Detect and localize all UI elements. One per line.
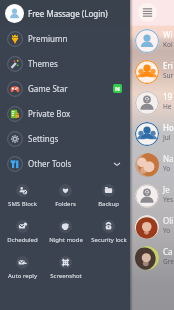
button[interactable]: Premiumn	[0, 26, 130, 51]
staticText: SMS Block	[8, 200, 37, 208]
staticText: Yes	[163, 195, 174, 204]
button[interactable]: Backup	[87, 181, 130, 217]
staticText: Private Box	[28, 108, 71, 119]
button[interactable]: Wi	[0, 25, 174, 56]
staticText: Yo	[163, 164, 171, 173]
staticText: Oli	[163, 215, 174, 226]
button[interactable]: Ca	[0, 242, 174, 273]
button[interactable]: Open navigation menu	[138, 3, 157, 22]
button[interactable]: Settings	[0, 126, 130, 151]
staticText: Dcheduled	[7, 236, 38, 244]
staticText: Wi	[163, 29, 173, 40]
button[interactable]: Ho	[0, 118, 174, 149]
button[interactable]: Screenshot	[44, 253, 87, 289]
staticText: 19	[163, 91, 173, 102]
staticText: Themes	[28, 58, 58, 69]
staticText: He	[163, 102, 172, 111]
staticText: Other Tools	[28, 158, 72, 169]
button[interactable]: Dcheduled	[0, 217, 44, 253]
staticText: Settings	[28, 133, 59, 144]
staticText: Na	[163, 153, 174, 164]
staticText: Premiumn	[28, 33, 68, 44]
button[interactable]: Game Star	[0, 76, 130, 101]
staticText: Kol	[163, 40, 173, 49]
staticText: Auto reply	[8, 272, 37, 280]
staticText: Free Massage (Login)	[28, 8, 108, 19]
button[interactable]: Free Massage (Login)	[0, 0, 130, 26]
button[interactable]: Other Tools	[0, 151, 130, 176]
staticText: N	[115, 85, 120, 93]
staticText: Yo	[163, 226, 171, 235]
button[interactable]: Private Box	[0, 101, 130, 126]
staticText: Ho	[163, 122, 174, 133]
button[interactable]: Oli	[0, 211, 174, 242]
staticText: Night mode	[49, 236, 83, 244]
staticText: Screenshot	[50, 272, 82, 280]
staticText: Sur	[163, 71, 174, 80]
button[interactable]: Eri	[0, 56, 174, 87]
button[interactable]: Night mode	[44, 217, 87, 253]
button[interactable]: Auto reply	[0, 253, 44, 289]
staticText: Folders	[55, 200, 76, 208]
staticText: Security lock	[91, 236, 127, 244]
staticText: Ca	[163, 246, 173, 257]
staticText: Backup	[98, 200, 119, 208]
staticText: Je	[163, 184, 170, 195]
button[interactable]: Themes	[0, 51, 130, 76]
button[interactable]: SMS Block	[0, 181, 44, 217]
button[interactable]: Folders	[44, 181, 87, 217]
button[interactable]: 19	[0, 87, 174, 118]
button[interactable]: Je	[0, 180, 174, 211]
staticText: Eri	[163, 60, 173, 71]
staticText: Game Star	[28, 83, 68, 94]
button[interactable]: Security lock	[87, 217, 130, 253]
button[interactable]: Na	[0, 149, 174, 180]
staticText: Jul	[163, 133, 171, 142]
staticText: Gre	[163, 257, 174, 266]
